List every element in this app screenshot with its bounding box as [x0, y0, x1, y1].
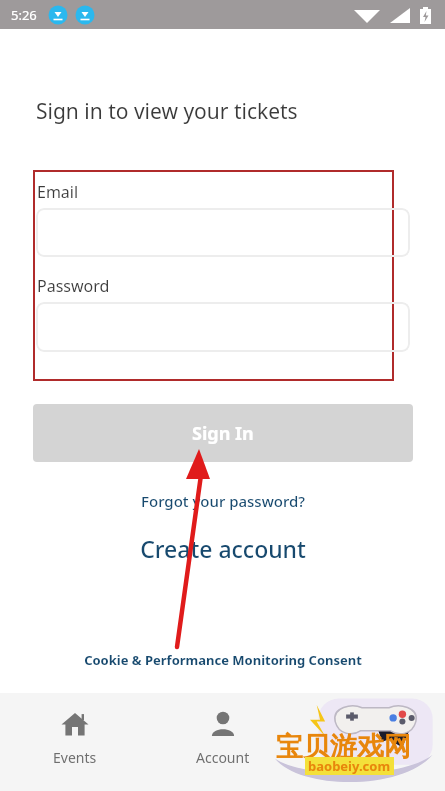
button[interactable]: Cookie & Performance Monitoring Consent [0, 648, 445, 672]
button[interactable]: Account [149, 693, 297, 767]
staticText: Account [196, 748, 250, 767]
staticText: 宝贝游戏网 [276, 730, 411, 764]
button[interactable]: Forgot your password? [0, 488, 445, 514]
staticText: Tickets [348, 748, 394, 767]
button[interactable]: Sign In [33, 404, 413, 462]
staticText: Events [53, 748, 97, 767]
staticText: Email [37, 181, 79, 203]
button[interactable]: Tickets [297, 693, 445, 767]
staticText: baobeiy.com [308, 757, 391, 775]
button[interactable] [36, 208, 410, 257]
button[interactable] [36, 302, 410, 352]
button[interactable]: Create account [0, 531, 445, 565]
staticText: Forgot your password? [141, 491, 305, 511]
staticText: Sign In [192, 421, 254, 446]
staticText: Create account [140, 533, 306, 564]
staticText: 5:26 [11, 6, 37, 24]
staticText: Password [37, 275, 110, 297]
staticText: Cookie & Performance Monitoring Consent [84, 651, 362, 669]
staticText: Sign in to view your tickets [36, 97, 298, 126]
button[interactable]: Events [0, 693, 149, 767]
